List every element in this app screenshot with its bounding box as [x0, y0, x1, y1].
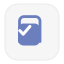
button[interactable]: Duplicate selection [0, 0, 64, 64]
